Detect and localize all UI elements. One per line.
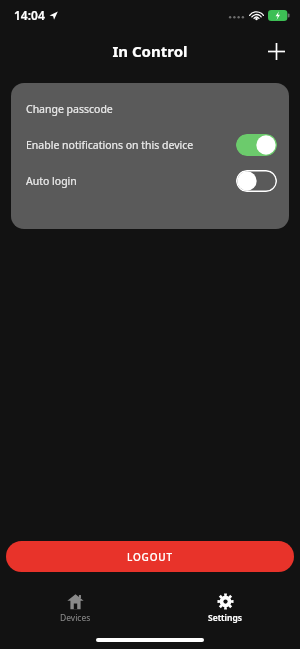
button[interactable]: Auto login <box>11 163 289 199</box>
staticText: Devices <box>60 612 91 624</box>
staticText: Auto login <box>26 174 236 188</box>
staticText: Change passcode <box>26 102 277 116</box>
staticText: In Control <box>112 41 188 61</box>
staticText: LOGOUT <box>127 550 173 564</box>
button[interactable]: Change passcode <box>11 91 289 127</box>
button[interactable]: Toggle off <box>236 170 277 192</box>
staticText: Settings <box>208 612 242 624</box>
button[interactable]: Enable notifications on this device <box>11 127 289 163</box>
button[interactable]: Add <box>258 33 294 69</box>
staticText: 14:04 <box>14 7 45 23</box>
button[interactable]: Settings <box>150 593 300 624</box>
button[interactable]: LOGOUT <box>6 541 294 572</box>
button[interactable]: Devices <box>0 593 150 624</box>
staticText: Enable notifications on this device <box>26 138 236 152</box>
button[interactable]: Toggle on <box>236 134 277 156</box>
